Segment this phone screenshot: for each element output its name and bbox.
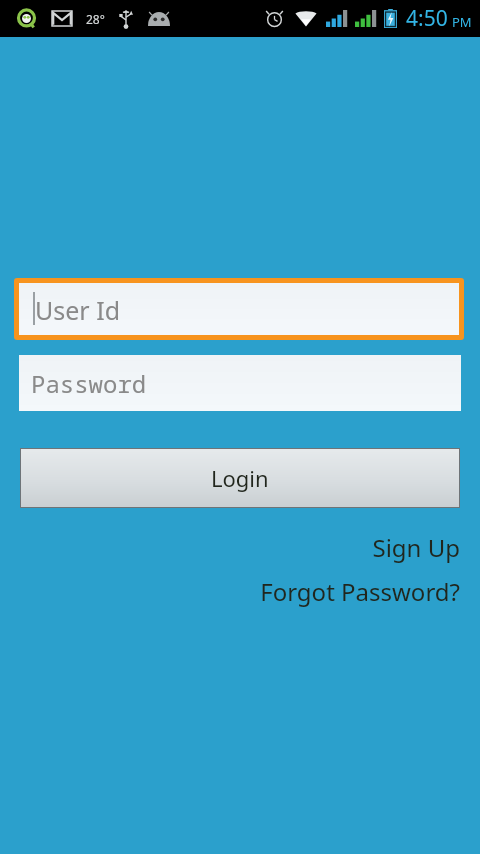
staticText: 28° <box>86 11 105 27</box>
button[interactable]: User Id <box>14 278 464 340</box>
staticText: User Id <box>35 293 121 327</box>
button[interactable]: Forgot Password? <box>234 574 464 608</box>
staticText: PM <box>452 13 472 31</box>
button[interactable]: Sign Up <box>346 530 464 564</box>
staticText: Password <box>31 367 147 400</box>
button[interactable]: Login <box>20 448 460 508</box>
staticText: Forgot Password? <box>260 575 460 608</box>
button[interactable]: Password <box>19 355 461 411</box>
staticText: Sign Up <box>372 531 460 564</box>
staticText: Login <box>211 463 269 493</box>
staticText: 4:50 <box>406 4 448 33</box>
